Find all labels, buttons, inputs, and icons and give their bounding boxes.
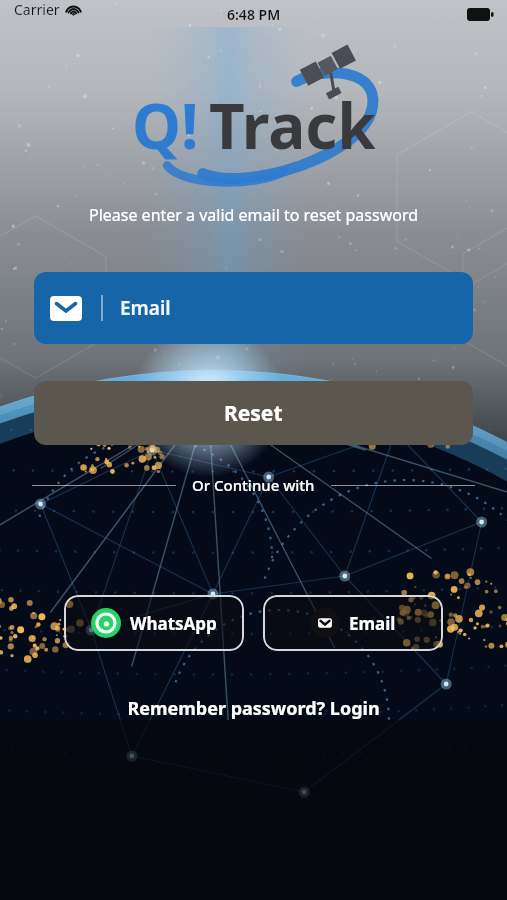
staticText: Email [349,612,396,635]
button[interactable]: Reset [34,381,473,445]
button[interactable]: Remember password? Login [0,696,507,721]
button[interactable]: Email [34,272,473,344]
staticText: Email [120,295,171,321]
staticText: Carrier [14,0,60,19]
staticText: Reset [224,399,283,428]
staticText: Track [209,83,376,167]
staticText: WhatsApp [130,612,217,635]
staticText: Or Continue with [192,475,315,495]
button[interactable]: WhatsApp [64,595,244,651]
staticText: 6:48 PM [227,5,281,24]
button[interactable]: Email [263,595,443,651]
staticText: Remember password? Login [127,696,380,721]
staticText: Please enter a valid email to reset pass… [0,204,507,226]
staticText: Q! [132,83,199,167]
